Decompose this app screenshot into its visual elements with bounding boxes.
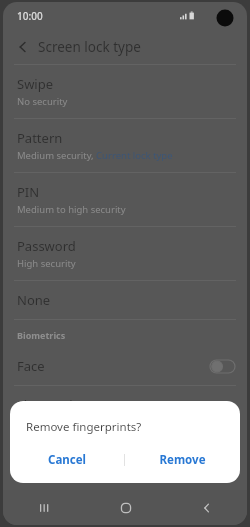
button[interactable]: Home (85, 490, 166, 525)
staticText: Swipe (17, 75, 54, 93)
staticText: Remove (159, 452, 206, 468)
button[interactable]: Swipe (3, 65, 247, 118)
button[interactable]: Fingerprints (3, 386, 247, 439)
button[interactable]: Off (210, 360, 235, 373)
button[interactable]: Back (166, 490, 247, 525)
button[interactable]: None (3, 281, 247, 319)
staticText: Remove fingerprints? (26, 419, 142, 435)
staticText: High security (17, 257, 76, 270)
staticText: Biometrics (17, 329, 66, 341)
staticText: None (17, 291, 51, 309)
staticText: Screen lock type (38, 38, 141, 56)
button[interactable]: Cancel (10, 443, 124, 477)
staticText: PIN (17, 183, 40, 201)
staticText: Registered (17, 416, 65, 429)
staticText: Pattern (17, 129, 63, 147)
staticText: 10:00 (17, 9, 43, 23)
button[interactable]: Pattern (3, 119, 247, 172)
staticText: Fingerprints (17, 396, 92, 414)
staticText: Medium to high security (17, 203, 126, 216)
button[interactable]: Back (11, 35, 35, 59)
button[interactable]: Password (3, 227, 247, 280)
button[interactable]: Remove (125, 443, 240, 477)
button[interactable]: Face (3, 347, 247, 385)
staticText: Cancel (48, 452, 86, 468)
staticText: Medium security, Current lock type (17, 149, 173, 162)
button[interactable]: PIN (3, 173, 247, 226)
staticText: Password (17, 237, 76, 255)
staticText: No security (17, 95, 68, 108)
button[interactable]: Recent apps (3, 490, 85, 525)
staticText: Face (17, 357, 45, 375)
